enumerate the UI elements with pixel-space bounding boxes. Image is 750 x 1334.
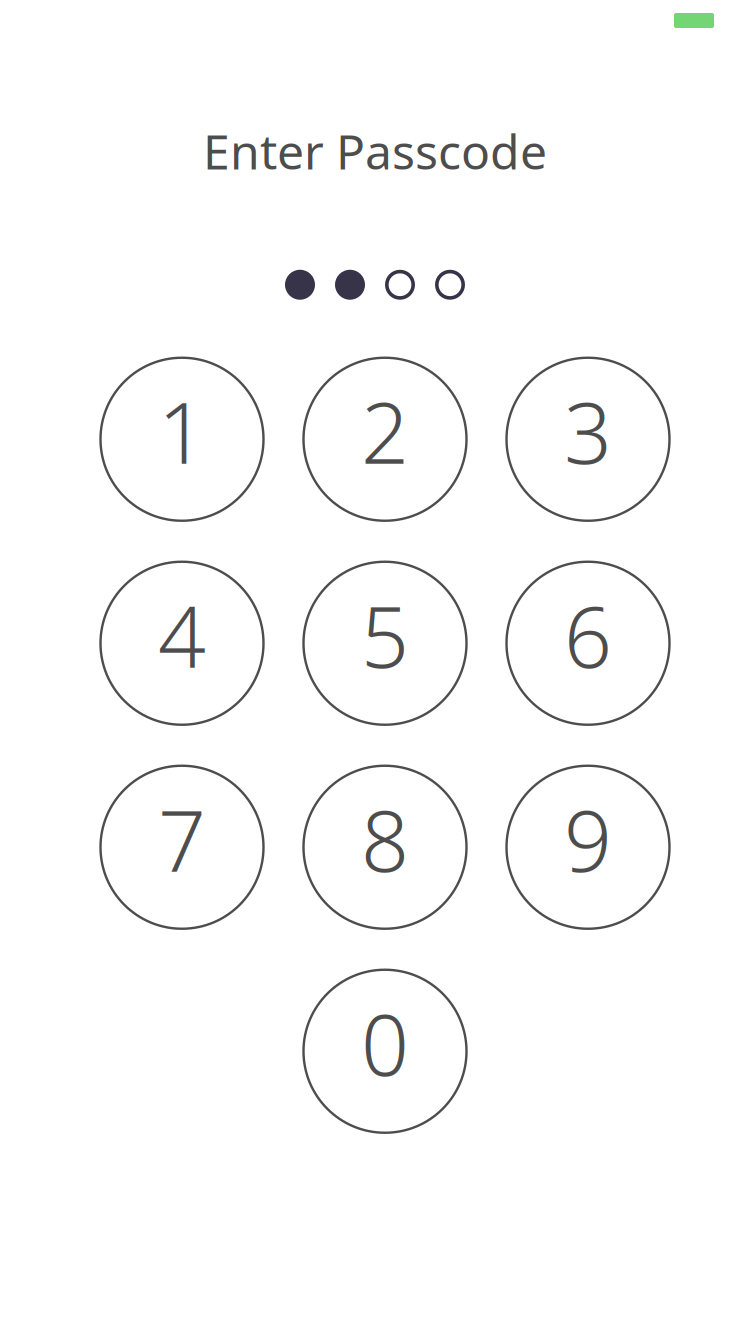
staticText: 8 (361, 783, 409, 895)
staticText: 1 (158, 375, 206, 487)
staticText: 9 (564, 783, 612, 895)
staticText: 0 (361, 987, 409, 1099)
staticText: 2 (361, 375, 409, 487)
button[interactable]: 9 (506, 766, 669, 929)
staticText: 7 (158, 783, 206, 895)
staticText: 3 (564, 375, 612, 487)
button[interactable]: 2 (303, 358, 466, 521)
staticText: 6 (564, 579, 612, 691)
button[interactable]: 1 (100, 358, 263, 521)
staticText: 5 (361, 579, 409, 691)
staticText: 4 (158, 579, 206, 691)
button[interactable]: 0 (303, 970, 466, 1133)
staticText: Enter Passcode (203, 119, 547, 183)
button[interactable]: 3 (506, 358, 669, 521)
button[interactable]: 6 (506, 562, 669, 725)
button[interactable]: 8 (303, 766, 466, 929)
button[interactable]: 4 (100, 562, 263, 725)
button[interactable]: 7 (100, 766, 263, 929)
button[interactable]: 5 (303, 562, 466, 725)
